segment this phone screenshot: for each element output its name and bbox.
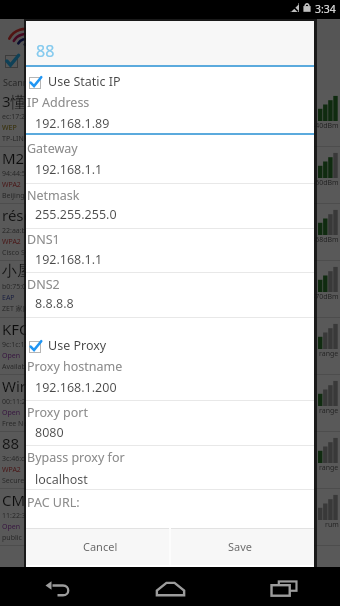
- staticText: WPA2: [2, 180, 21, 190]
- staticText: -60dBm: [313, 178, 339, 188]
- staticText: Bypass proxy for: [27, 449, 125, 466]
- staticText: WEP: [2, 123, 17, 133]
- staticText: WPA2: [2, 237, 21, 247]
- staticText: 192.168.1.1: [35, 251, 103, 268]
- staticText: 00:11:22:aa:bb: [2, 397, 50, 407]
- staticText: Proxy hostname: [27, 358, 123, 375]
- staticText: 11:22:33:aa:bb: [2, 511, 50, 521]
- staticText: public: [2, 533, 22, 543]
- staticText: 192.168.1.1: [35, 161, 103, 178]
- staticText: Free Net: [2, 419, 30, 429]
- staticText: 192.168.1.89: [35, 115, 110, 132]
- staticText: localhost: [35, 471, 88, 488]
- staticText: TP-LINK_x: [2, 134, 35, 144]
- staticText: 22:aa:bb:cc:dd: [2, 226, 50, 236]
- staticText: DNS2: [27, 276, 60, 293]
- staticText: Available: [2, 362, 32, 372]
- staticText: Secure Ap: [2, 476, 35, 486]
- button[interactable]: Save: [170, 528, 314, 565]
- staticText: 192.168.1.200: [35, 379, 117, 396]
- staticText: range: [319, 406, 339, 416]
- staticText: Wireless: [2, 376, 61, 396]
- staticText: réseau: [2, 205, 50, 225]
- button[interactable]: 3懂的: [0, 90, 340, 147]
- staticText: rum: [325, 520, 339, 530]
- staticText: IP Address: [27, 94, 90, 111]
- button[interactable]: KFC: [0, 318, 340, 375]
- staticText: Beijing Xia: [2, 191, 37, 201]
- staticText: Open: [2, 522, 21, 532]
- button[interactable]: 88: [0, 432, 340, 489]
- staticText: -68dBm: [313, 235, 339, 245]
- staticText: 3:34: [315, 2, 336, 16]
- button[interactable]: Cancel: [26, 528, 170, 565]
- button[interactable]: 小屋: [0, 261, 340, 318]
- staticText: 94:44:52:aa:bb: [2, 169, 50, 179]
- staticText: Netmask: [27, 187, 80, 204]
- staticText: Use Static IP: [48, 73, 121, 90]
- staticText: Save: [228, 539, 253, 554]
- staticText: 3懂的: [2, 91, 41, 111]
- staticText: Scanning...: [3, 76, 50, 88]
- staticText: range: [319, 463, 339, 473]
- staticText: Use Proxy: [48, 337, 107, 354]
- staticText: -40dBm: [313, 121, 339, 131]
- staticText: Cancel: [83, 539, 118, 554]
- staticText: KFC: [2, 319, 29, 339]
- button[interactable]: Wireless: [0, 375, 340, 432]
- staticText: Gateway: [27, 140, 78, 157]
- staticText: b0:75:0c:aa:bb: [2, 282, 50, 292]
- staticText: DNS1: [27, 231, 60, 248]
- staticText: EAP: [2, 293, 15, 303]
- staticText: 8.8.8.8: [35, 295, 74, 312]
- button[interactable]: M2 家: [0, 147, 340, 204]
- staticText: -70dBm: [313, 292, 339, 302]
- staticText: Proxy port: [27, 404, 88, 421]
- staticText: 88: [2, 433, 20, 453]
- staticText: 8080: [35, 424, 64, 441]
- button[interactable]: Home: [114, 571, 227, 606]
- staticText: 9c:1c:12:aa:bb: [2, 340, 49, 350]
- button[interactable]: Use Static IP: [26, 66, 314, 92]
- button[interactable]: Use Proxy: [26, 317, 314, 356]
- button[interactable]: Recents: [227, 571, 340, 606]
- staticText: 255.255.255.0: [35, 206, 117, 223]
- staticText: Open: [2, 408, 21, 418]
- staticText: ZET 家庭: [2, 304, 30, 314]
- staticText: 小屋: [2, 262, 32, 281]
- staticText: ec:17:2f:aa:bb: [2, 112, 48, 122]
- staticText: Open: [2, 351, 21, 361]
- button[interactable]: CMCC: [0, 489, 340, 546]
- button[interactable]: réseau: [0, 204, 340, 261]
- staticText: M2 家: [2, 148, 44, 168]
- staticText: CMCC: [2, 490, 44, 510]
- staticText: Cisco Sys: [2, 248, 32, 258]
- staticText: PAC URL:: [27, 494, 80, 511]
- staticText: 3c:46:d8:aa:bb: [2, 454, 50, 464]
- staticText: range: [319, 349, 339, 359]
- staticText: 88: [36, 40, 55, 62]
- button[interactable]: Back: [0, 571, 114, 606]
- staticText: WPA2: [2, 465, 21, 475]
